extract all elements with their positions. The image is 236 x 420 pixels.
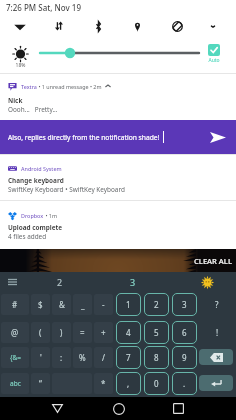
staticText: 3	[182, 299, 187, 310]
button[interactable]: 4	[116, 321, 141, 344]
button[interactable]: 3	[96, 272, 170, 292]
staticText: .	[183, 378, 186, 389]
staticText: 5	[154, 327, 159, 338]
button[interactable]: Keyboard menu	[1, 272, 23, 292]
staticText: )	[60, 327, 63, 338]
staticText: 2	[57, 276, 63, 288]
button[interactable]: Bluetooth	[86, 14, 110, 38]
staticText: • 1 unread message • 2m	[37, 83, 102, 90]
staticText: @	[11, 327, 19, 338]
staticText: 7	[126, 352, 131, 363]
button[interactable]: Android System	[0, 156, 236, 200]
button[interactable]: +	[94, 322, 113, 343]
staticText: 1	[126, 299, 131, 310]
button[interactable]: 2	[144, 293, 169, 316]
staticText: 0	[154, 378, 159, 389]
button[interactable]: Brightness	[10, 45, 31, 70]
button[interactable]: *	[94, 373, 113, 394]
staticText: =	[80, 327, 85, 338]
button[interactable]: .	[172, 372, 197, 395]
button[interactable]: Enter	[199, 375, 233, 391]
button[interactable]: =	[73, 322, 92, 343]
staticText: Nick	[8, 96, 23, 105]
button[interactable]: Expand quick settings	[201, 14, 225, 38]
button[interactable]: :	[52, 347, 71, 368]
staticText: Upload complete	[8, 223, 63, 232]
button[interactable]: %	[73, 347, 92, 368]
staticText: 7:26 PM Sat, Nov 19	[6, 2, 81, 13]
staticText: “	[39, 378, 42, 389]
staticText: 6	[182, 327, 187, 338]
staticText: SwiftKey Keyboard • SwiftKey Keyboard	[8, 185, 125, 194]
button[interactable]: -	[94, 294, 113, 315]
staticText: abc	[10, 379, 21, 388]
button[interactable]: Also, replies directly from the notifica…	[0, 120, 236, 154]
button[interactable]: Back	[39, 397, 76, 420]
button[interactable]: Textra	[0, 74, 236, 120]
button[interactable]: 5	[144, 321, 169, 344]
staticText: Dropbox	[21, 212, 44, 219]
staticText: ,	[127, 378, 130, 389]
button[interactable]: “	[31, 373, 50, 394]
button[interactable]: ?	[198, 293, 236, 316]
button[interactable]: (	[31, 322, 50, 343]
staticText: 18%	[10, 62, 31, 69]
button[interactable]: 3	[172, 293, 197, 316]
staticText: 9	[182, 352, 187, 363]
button[interactable]: Brightness level	[36, 47, 204, 59]
button[interactable]: Location	[125, 14, 149, 38]
button[interactable]: )	[52, 322, 71, 343]
button[interactable]: _	[73, 294, 92, 315]
button[interactable]: Auto	[202, 44, 226, 64]
button[interactable]: '	[31, 347, 50, 368]
staticText: %	[79, 352, 86, 363]
staticText: /	[102, 352, 105, 363]
button[interactable]: 7	[116, 346, 141, 369]
button[interactable]: &	[52, 294, 71, 315]
button[interactable]: !	[198, 321, 236, 344]
staticText: 4 files added	[8, 232, 47, 241]
button[interactable]: Delete	[199, 349, 233, 365]
button[interactable]: Auto rotate	[165, 14, 189, 38]
button[interactable]: 8	[144, 346, 169, 369]
button[interactable]: 0	[144, 372, 169, 395]
staticText: 4	[126, 327, 131, 338]
button[interactable]: 1	[116, 293, 141, 316]
button[interactable]: @	[1, 322, 29, 343]
staticText: ?	[215, 299, 219, 310]
staticText: {&=	[10, 353, 21, 362]
staticText: '	[40, 352, 42, 363]
button[interactable]: ,	[116, 372, 141, 395]
button[interactable]: Send reply	[200, 120, 236, 154]
staticText: 3	[130, 276, 136, 288]
staticText: &	[59, 299, 65, 310]
button[interactable]: Home	[100, 397, 137, 420]
button[interactable]: 2	[24, 272, 96, 292]
button[interactable]: $	[31, 294, 50, 315]
staticText: (	[39, 327, 42, 338]
button[interactable]: /	[94, 347, 113, 368]
staticText: !	[216, 327, 219, 338]
staticText: Android System	[21, 165, 62, 172]
button[interactable]: Mobile data	[47, 14, 71, 38]
button[interactable]: Dropbox	[0, 203, 236, 248]
staticText: Also, replies directly from the notifica…	[8, 133, 160, 142]
button[interactable]: #	[1, 294, 29, 315]
button[interactable]: Emoji	[190, 272, 224, 292]
button[interactable]: 6	[172, 321, 197, 344]
button[interactable]: 9	[172, 346, 197, 369]
button[interactable]: abc	[1, 373, 29, 394]
staticText: 2	[154, 299, 159, 310]
staticText: -	[102, 299, 105, 310]
staticText: • 1m	[44, 212, 57, 219]
staticText: $	[38, 299, 43, 310]
button[interactable]: CLEAR ALL	[194, 256, 232, 266]
staticText: :	[60, 352, 63, 363]
button[interactable]: Recent apps	[160, 397, 197, 420]
staticText: _	[81, 299, 85, 310]
button[interactable]: Wi-Fi	[8, 14, 32, 38]
staticText: *	[101, 378, 106, 389]
button[interactable]: {&=	[1, 347, 29, 368]
staticText: Auto	[202, 57, 226, 64]
